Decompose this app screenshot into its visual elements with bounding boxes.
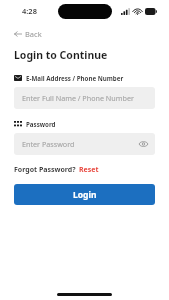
staticText: Login [73,189,97,201]
staticText: Forgot Password? [14,165,76,175]
staticText: Enter Full Name / Phone Number [22,93,134,103]
staticText: Reset [79,165,99,175]
button[interactable]: Show password [136,137,150,151]
button[interactable]: Login [14,184,155,205]
staticText: 4:28 [22,6,37,16]
button[interactable]: Back [10,26,46,42]
staticText: Back [25,29,42,39]
staticText: Login to Continue [14,48,108,62]
button[interactable]: Enter Password [14,133,155,155]
button[interactable]: Reset [79,165,99,175]
staticText: Enter Password [22,139,75,149]
staticText: E-Mail Address / Phone Number [26,74,124,82]
button[interactable]: Enter Full Name / Phone Number [14,87,155,109]
staticText: Password [26,120,56,128]
